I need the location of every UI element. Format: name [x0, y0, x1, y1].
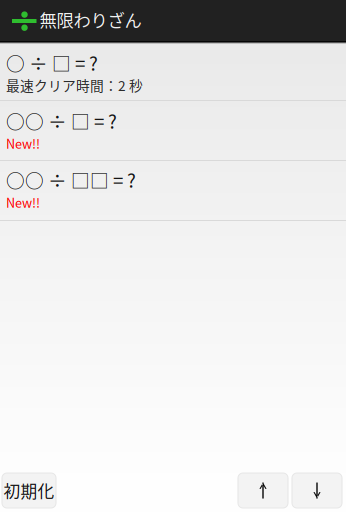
button[interactable]: 初期化 — [2, 473, 56, 508]
staticText: 最速クリア時間：2 秒 — [6, 75, 143, 95]
staticText: 初期化 — [3, 478, 54, 502]
staticText: ○ ÷ □ = ? — [6, 49, 98, 76]
button[interactable]: Move down — [292, 473, 342, 508]
button[interactable]: Move up — [238, 473, 288, 508]
staticText: ○○ ÷ □ = ? — [6, 107, 117, 134]
staticText: New!! — [6, 193, 40, 211]
button[interactable]: ○ ÷ □ = ? — [0, 44, 346, 100]
button[interactable]: ○○ ÷ □ = ? — [0, 101, 346, 160]
staticText: ○○ ÷ □□ = ? — [6, 166, 136, 193]
button[interactable]: ○○ ÷ □□ = ? — [0, 161, 346, 220]
staticText: 無限わりざん — [39, 7, 141, 32]
staticText: New!! — [6, 134, 40, 152]
